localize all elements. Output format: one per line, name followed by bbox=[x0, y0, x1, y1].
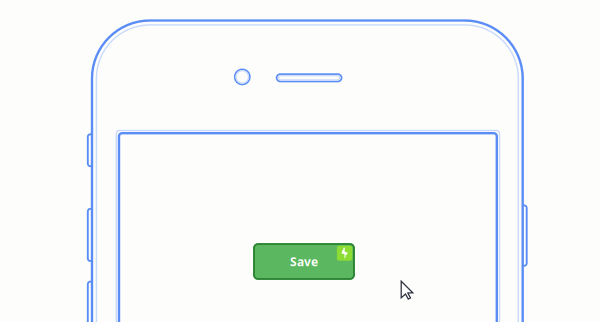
button[interactable]: Save bbox=[254, 244, 354, 279]
staticText: Save bbox=[290, 253, 318, 269]
